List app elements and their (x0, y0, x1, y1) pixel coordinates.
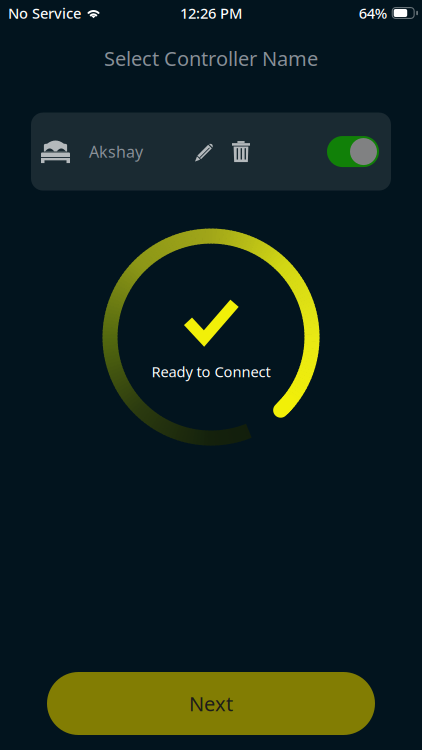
button[interactable]: Rename controller (187, 134, 223, 170)
staticText: Select Controller Name (104, 45, 318, 72)
button[interactable]: Next (47, 672, 375, 735)
staticText: Next (189, 690, 233, 717)
staticText: No Service (8, 3, 81, 23)
button[interactable]: Delete controller (223, 133, 259, 170)
staticText: 12:26 PM (180, 3, 242, 23)
button[interactable]: Enable controller (327, 129, 379, 175)
staticText: 64% (359, 3, 387, 23)
staticText: Akshay (89, 141, 143, 162)
staticText: Ready to Connect (151, 362, 270, 381)
